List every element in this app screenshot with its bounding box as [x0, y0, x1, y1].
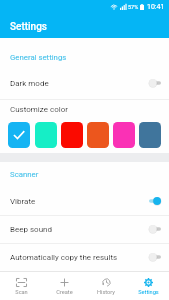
button[interactable]: Color option — [8, 122, 30, 148]
button[interactable]: Create — [43, 272, 85, 300]
staticText: Settings — [138, 289, 159, 296]
button[interactable]: Color option — [139, 122, 161, 148]
button[interactable]: Dark mode — [0, 69, 169, 97]
staticText: Beep sound — [10, 225, 148, 234]
button[interactable]: Settings — [127, 272, 169, 300]
staticText: 10:41 — [147, 3, 165, 11]
staticText: Scanner — [10, 170, 39, 179]
staticText: Customize color — [10, 105, 68, 114]
button[interactable]: Color option — [87, 122, 109, 148]
button[interactable]: Automatically copy the results — [0, 243, 169, 271]
staticText: Dark mode — [10, 79, 148, 88]
staticText: 57% — [128, 4, 139, 10]
button[interactable]: Vibrate — [0, 187, 169, 215]
staticText: General settings — [10, 53, 67, 62]
staticText: Automatically copy the results — [10, 253, 148, 262]
staticText: Vibrate — [10, 197, 148, 206]
button[interactable]: Color option — [113, 122, 135, 148]
button[interactable]: Color option — [61, 122, 83, 148]
button[interactable]: Scan — [0, 272, 43, 300]
button[interactable]: Color option — [35, 122, 57, 148]
staticText: History — [97, 289, 115, 296]
staticText: Scan — [15, 289, 28, 296]
staticText: Create — [56, 289, 73, 296]
button[interactable]: Beep sound — [0, 215, 169, 243]
staticText: Settings — [10, 21, 48, 33]
button[interactable]: History — [85, 272, 127, 300]
